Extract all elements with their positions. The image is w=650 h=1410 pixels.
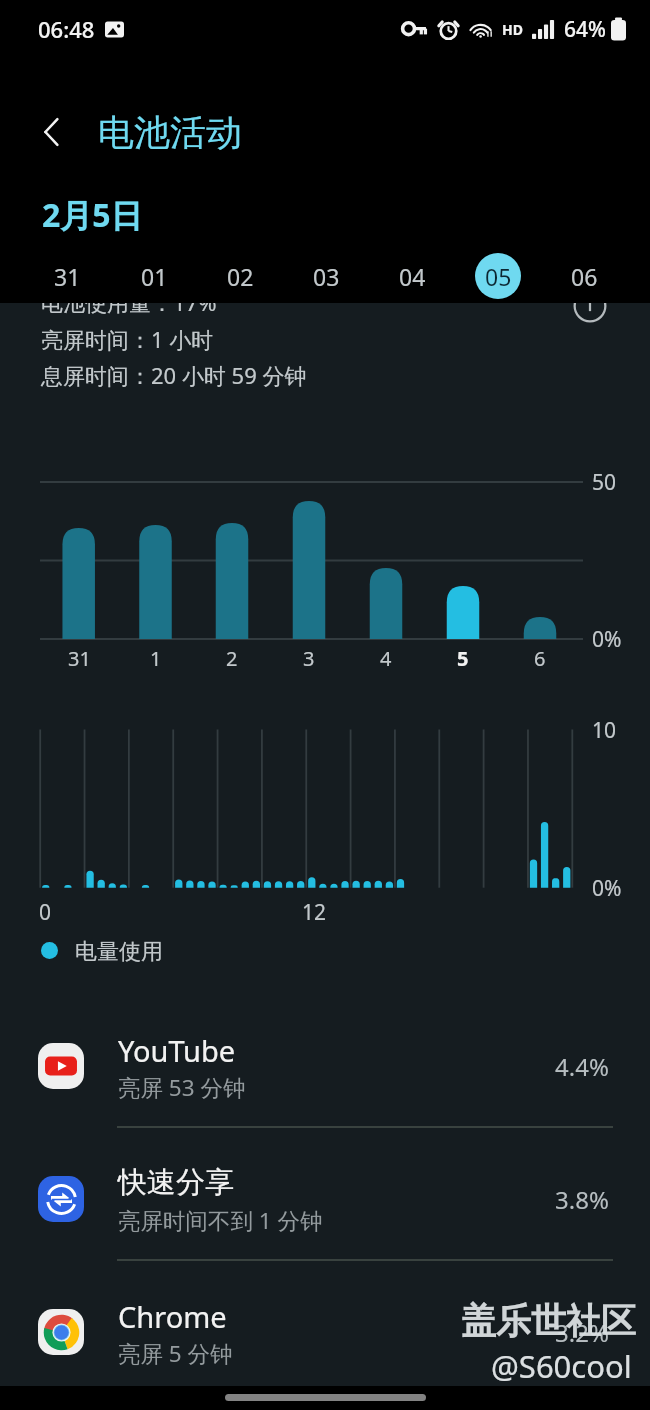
staticText: @S60cool: [491, 1345, 632, 1387]
staticText: 04: [399, 261, 426, 292]
staticText: 64%: [564, 15, 606, 44]
staticText: 10: [592, 716, 617, 744]
button[interactable]: 01: [116, 247, 192, 305]
staticText: 31: [68, 645, 91, 672]
staticText: 02: [227, 261, 254, 292]
button[interactable]: YouTube: [0, 1000, 650, 1126]
staticText: 亮屏时间：1 小时: [41, 324, 214, 354]
button[interactable]: Chrome: [0, 1266, 650, 1392]
staticText: 0: [39, 898, 52, 927]
button[interactable]: Back: [28, 108, 76, 156]
staticText: 1: [150, 645, 162, 672]
button[interactable]: Info: [567, 283, 612, 328]
button[interactable]: 02: [202, 247, 278, 305]
staticText: 亮屏时间不到 1 分钟: [118, 1205, 323, 1236]
staticText: 电池活动: [98, 110, 242, 155]
staticText: 4.4%: [555, 1050, 609, 1083]
staticText: 亮屏 53 分钟: [118, 1072, 246, 1103]
button[interactable]: 04: [374, 247, 450, 305]
button[interactable]: 05: [460, 247, 536, 305]
staticText: 4: [380, 645, 392, 672]
button[interactable]: 06: [546, 247, 622, 305]
staticText: 2: [226, 645, 238, 672]
staticText: 2月5日: [42, 193, 143, 237]
staticText: 01: [141, 261, 168, 292]
staticText: 电量使用: [75, 938, 163, 966]
staticText: YouTube: [118, 1031, 236, 1070]
staticText: 05: [485, 261, 512, 292]
staticText: 3: [303, 645, 315, 672]
staticText: 盖乐世社区: [461, 1299, 636, 1343]
staticText: 电池使用量：17%: [41, 287, 217, 317]
button[interactable]: 31: [29, 247, 105, 305]
staticText: 31: [54, 261, 81, 292]
staticText: 50: [592, 468, 617, 496]
staticText: Chrome: [118, 1297, 227, 1336]
staticText: 息屏时间：20 小时 59 分钟: [41, 360, 307, 390]
staticText: 06:48: [38, 14, 95, 44]
staticText: 3.2%: [555, 1316, 609, 1349]
staticText: 06: [571, 261, 598, 292]
staticText: 03: [313, 261, 340, 292]
staticText: 快速分享: [118, 1164, 234, 1201]
staticText: 5: [457, 645, 469, 672]
button[interactable]: 快速分享: [0, 1133, 650, 1259]
staticText: HD: [502, 20, 523, 39]
staticText: 0%: [592, 874, 622, 902]
staticText: 亮屏 5 分钟: [118, 1338, 233, 1369]
staticText: 0%: [592, 625, 622, 653]
staticText: 6: [534, 645, 546, 672]
staticText: 12: [302, 898, 327, 927]
staticText: 3.8%: [555, 1183, 609, 1216]
button[interactable]: 03: [288, 247, 364, 305]
